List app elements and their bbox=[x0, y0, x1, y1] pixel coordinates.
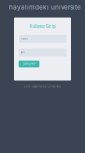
staticText: 2019 Hayalimdeki Üniversite bbox=[23, 85, 61, 88]
staticText: hayalimdeki üniversite bbox=[9, 3, 81, 11]
staticText: Şifre bbox=[20, 51, 24, 54]
staticText: GİRİŞ YAP bbox=[23, 63, 35, 65]
button[interactable]: GİRİŞ YAP bbox=[19, 61, 39, 67]
staticText: Kullanıcı Girişi bbox=[29, 24, 55, 29]
staticText: E-posta bbox=[20, 38, 27, 40]
